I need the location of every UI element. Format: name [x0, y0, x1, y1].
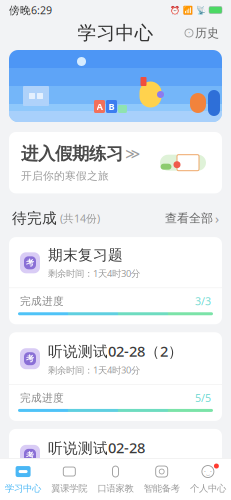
staticText: 学习中心 [77, 21, 153, 44]
staticText: 6/6 [195, 487, 211, 500]
button[interactable]: ·‿· [185, 463, 231, 494]
staticText: 听说测试02-28 [48, 438, 145, 457]
staticText: · [188, 28, 190, 38]
button[interactable]: · [181, 22, 223, 44]
staticText: 傍晚6:29 [9, 3, 52, 17]
staticText: B [108, 100, 114, 113]
staticText: 5/5 [195, 391, 211, 405]
button[interactable]: 查看全部 [159, 206, 219, 230]
button[interactable]: 口语家教 [92, 463, 139, 494]
staticText: 剩余时间：1天4时30分 [48, 460, 140, 473]
staticText: 翼课学院 [51, 482, 87, 494]
staticText: 剩余时间：1天4时30分 [48, 267, 140, 279]
staticText: 进入假期练习 [21, 143, 123, 164]
button[interactable]: 学习中心 [0, 463, 46, 494]
staticText: 📡 [196, 5, 206, 14]
staticText: › [215, 209, 219, 227]
button[interactable]: 翼课学院 [46, 463, 92, 494]
staticText: 完成进度 [20, 295, 64, 308]
staticText: 3/3 [195, 294, 211, 308]
staticText: 查看全部 [165, 211, 213, 226]
staticText: 学习中心 [5, 482, 41, 494]
button[interactable]: 考 [9, 332, 222, 421]
staticText: (共14份) [57, 211, 100, 225]
staticText: A [96, 100, 102, 113]
staticText: 历史 [195, 26, 219, 40]
button[interactable]: 进入假期练习 [9, 132, 222, 193]
staticText: 考 [26, 258, 34, 268]
staticText: 剩余时间：1天4时30分 [48, 364, 140, 376]
staticText: 完成进度 [20, 391, 64, 404]
staticText: ·‿· [204, 467, 212, 476]
staticText: 待完成 [12, 209, 57, 227]
button[interactable]: 考 [9, 237, 222, 324]
staticText: ≫ [125, 145, 140, 162]
staticText: 个人中心 [190, 482, 226, 494]
button[interactable]: 智能备考 [139, 463, 185, 494]
button[interactable]: 考 [9, 429, 222, 500]
staticText: 听说测试02-28（2） [48, 341, 183, 361]
staticText: 口语家教 [97, 482, 133, 494]
staticText: ⏰ [170, 5, 180, 14]
staticText: 考 [26, 354, 34, 364]
staticText: 开启你的寒假之旅 [21, 169, 109, 182]
staticText: 完成进度 [20, 488, 64, 500]
staticText: 期末复习题 [48, 246, 123, 264]
staticText: 📶 [183, 5, 193, 14]
staticText: 考 [26, 450, 34, 460]
staticText: 智能备考 [144, 482, 180, 494]
